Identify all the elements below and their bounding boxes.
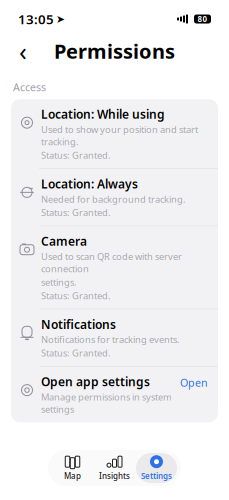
staticText: 13:05: [18, 10, 54, 28]
staticText: Status: Granted.: [41, 347, 111, 359]
button[interactable]: Map: [52, 453, 93, 483]
button[interactable]: Back: [8, 36, 38, 66]
staticText: Camera: [41, 233, 87, 249]
staticText: Used to scan QR code with server connect…: [41, 250, 182, 275]
button[interactable]: Open app settings: [11, 367, 218, 422]
staticText: ‹: [19, 34, 27, 68]
staticText: ➤: [56, 13, 65, 25]
staticText: Location: While using: [41, 106, 165, 122]
button[interactable]: Settings: [136, 453, 177, 483]
staticText: Open app settings: [41, 374, 150, 389]
button[interactable]: Camera: [11, 226, 218, 309]
staticText: Status: Granted.: [41, 289, 111, 302]
staticText: Status: Granted.: [41, 206, 111, 219]
staticText: Permissions: [54, 38, 175, 64]
staticText: Used to show your position and start tra…: [41, 123, 198, 148]
staticText: Notifications: [41, 316, 116, 332]
button[interactable]: Location: Always: [11, 169, 218, 226]
staticText: Notifications for tracking events.: [41, 333, 180, 346]
staticText: Insights: [99, 471, 130, 481]
staticText: Manage permissions in system settings: [41, 391, 172, 415]
button[interactable]: Insights: [94, 453, 135, 483]
staticText: Settings: [141, 471, 172, 481]
staticText: Access: [13, 80, 46, 94]
staticText: 80: [197, 14, 207, 24]
staticText: Location: Always: [41, 176, 138, 192]
staticText: settings.: [41, 276, 77, 288]
button[interactable]: Notifications: [11, 309, 218, 366]
staticText: Status: Granted.: [41, 149, 111, 161]
staticText: Needed for background tracking.: [41, 193, 186, 205]
button[interactable]: Location: While using: [11, 99, 218, 168]
staticText: Map: [64, 471, 81, 481]
staticText: Open: [180, 376, 208, 390]
